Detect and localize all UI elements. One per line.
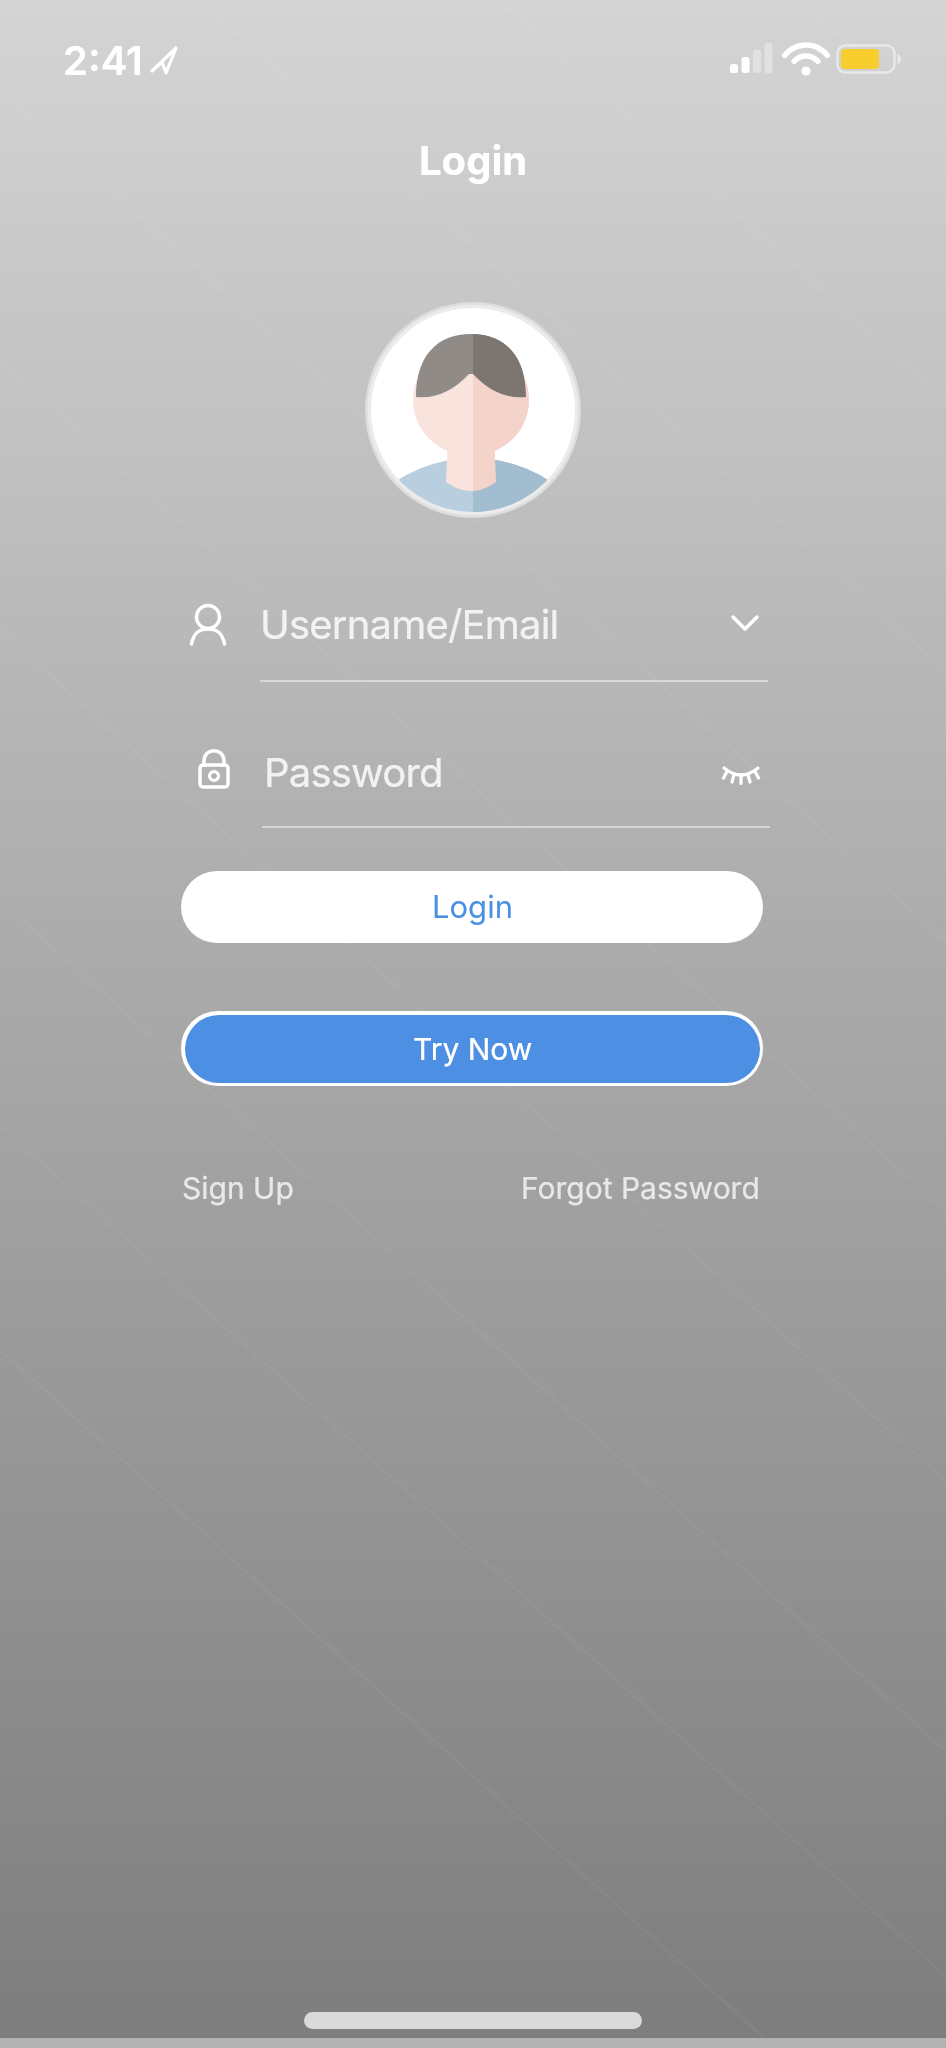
staticText: Password bbox=[264, 748, 443, 796]
button[interactable]: Sign Up bbox=[182, 1170, 294, 1206]
button[interactable]: Try Now bbox=[181, 1011, 763, 1086]
button[interactable] bbox=[363, 300, 583, 520]
staticText: 2:41 bbox=[63, 36, 143, 84]
button[interactable]: Username/Email bbox=[178, 580, 772, 670]
button[interactable]: Login bbox=[181, 871, 763, 943]
staticText: Try Now bbox=[413, 1031, 533, 1067]
button[interactable]: Password bbox=[178, 726, 772, 816]
staticText: Username/Email bbox=[260, 600, 559, 648]
button[interactable]: Forgot Password bbox=[521, 1170, 760, 1206]
staticText: Login bbox=[419, 136, 528, 184]
staticText: Login bbox=[432, 888, 513, 926]
